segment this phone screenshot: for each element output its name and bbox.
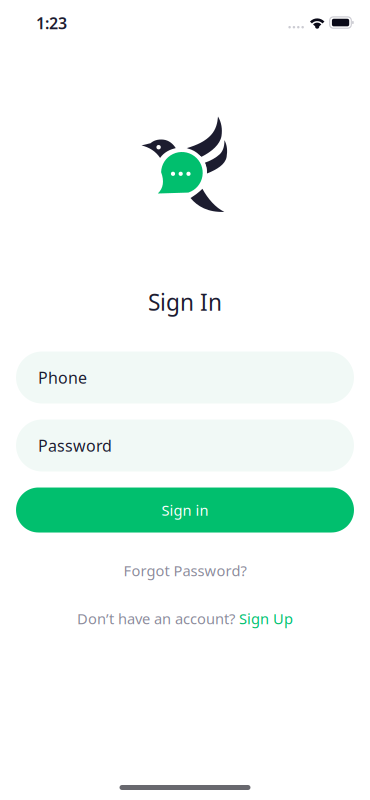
button[interactable]: Sign in xyxy=(16,487,354,532)
button[interactable]: Phone xyxy=(16,351,354,403)
staticText: Password xyxy=(38,435,112,456)
button[interactable]: Password xyxy=(16,419,354,471)
staticText: Don’t have an account? xyxy=(77,609,235,628)
staticText: Forgot Password? xyxy=(123,561,246,580)
button[interactable]: Forgot Password? xyxy=(16,560,354,580)
staticText: Phone xyxy=(38,367,87,388)
staticText: Sign In xyxy=(148,287,222,317)
staticText: Sign in xyxy=(161,500,208,520)
staticText: 1:23 xyxy=(36,12,67,34)
staticText: Sign Up xyxy=(239,609,293,628)
button[interactable]: Sign Up xyxy=(239,609,293,628)
